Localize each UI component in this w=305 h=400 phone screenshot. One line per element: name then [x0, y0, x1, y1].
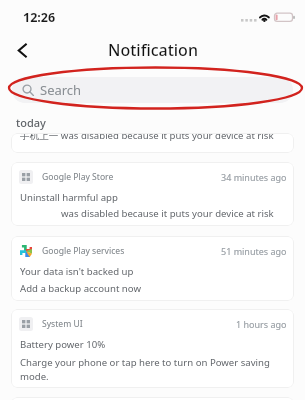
staticText: 1 hours ago	[236, 318, 287, 330]
staticText: Charge your phone or tap here to turn on…	[20, 356, 292, 382]
staticText: Google Play services	[42, 245, 125, 257]
staticText: was disabled because it puts your device…	[61, 207, 274, 220]
button[interactable]	[11, 397, 294, 400]
staticText: today	[16, 115, 46, 130]
staticText: Uninstall harmful app	[20, 191, 118, 204]
staticText: 51 minutes ago	[221, 245, 287, 257]
staticText: Battery power 10%	[20, 338, 106, 351]
button[interactable]: Google Play services	[11, 236, 294, 301]
staticText: Notification	[108, 39, 198, 61]
button[interactable]: Google Play Store	[11, 162, 294, 226]
staticText: 34 minutes ago	[221, 171, 287, 183]
staticText: Search	[40, 81, 82, 99]
staticText: Your data isn't backed up	[20, 265, 134, 278]
staticText: System UI	[42, 318, 83, 330]
button[interactable]: 手机上一 was disabled because it puts your d…	[11, 133, 294, 153]
staticText: 12:26	[23, 9, 56, 26]
button[interactable]: Back	[4, 32, 40, 68]
staticText: Google Play Store	[42, 171, 114, 183]
button[interactable]: Search	[12, 77, 293, 103]
button[interactable]: System UI	[11, 309, 294, 388]
staticText: Add a backup account now	[20, 282, 141, 295]
staticText: 手机上一 was disabled because it puts your d…	[20, 133, 274, 142]
